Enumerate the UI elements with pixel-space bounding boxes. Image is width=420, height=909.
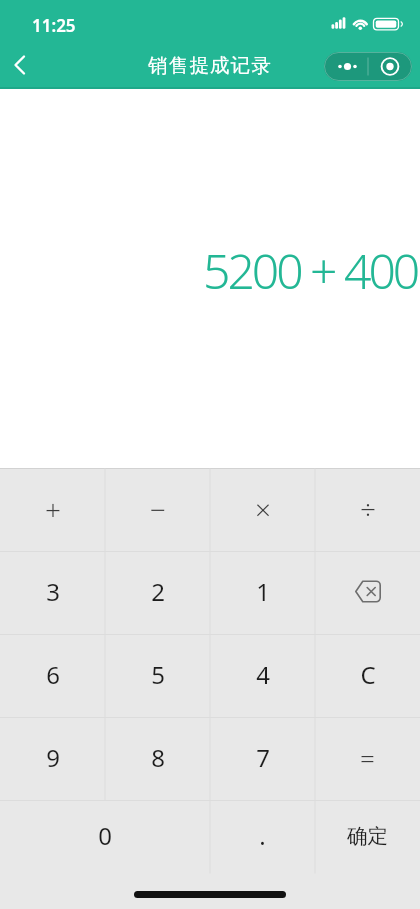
- staticText: 5200 + 400: [203, 238, 418, 303]
- staticText: ÷: [360, 490, 376, 528]
- staticText: C: [360, 658, 376, 691]
- staticText: ×: [255, 490, 271, 528]
- button[interactable]: 2: [105, 552, 210, 635]
- staticText: .: [259, 819, 266, 852]
- staticText: 8: [151, 741, 165, 774]
- staticText: 11:25: [32, 14, 76, 37]
- staticText: 3: [46, 575, 60, 608]
- staticText: 0: [98, 819, 112, 852]
- button[interactable]: 9: [0, 718, 105, 801]
- staticText: 1: [256, 575, 270, 608]
- staticText: 4: [256, 658, 270, 691]
- button[interactable]: 1: [210, 552, 315, 635]
- button[interactable]: 5: [105, 635, 210, 718]
- staticText: 确定: [347, 823, 388, 849]
- button[interactable]: 6: [0, 635, 105, 718]
- staticText: 7: [256, 741, 270, 774]
- staticText: −: [150, 490, 166, 528]
- button[interactable]: 7: [210, 718, 315, 801]
- staticText: =: [360, 740, 375, 775]
- button[interactable]: C: [315, 635, 420, 718]
- button[interactable]: 4: [210, 635, 315, 718]
- button[interactable]: 确定: [315, 801, 420, 874]
- staticText: 9: [46, 741, 60, 774]
- button[interactable]: 0: [0, 801, 210, 874]
- staticText: 6: [46, 658, 60, 691]
- button[interactable]: ÷: [315, 469, 420, 552]
- staticText: 2: [151, 575, 165, 608]
- button[interactable]: −: [105, 469, 210, 552]
- button[interactable]: 3: [0, 552, 105, 635]
- button[interactable]: =: [315, 718, 420, 801]
- button[interactable]: [324, 52, 412, 81]
- button[interactable]: ×: [210, 469, 315, 552]
- button[interactable]: +: [0, 469, 105, 552]
- staticText: +: [45, 490, 61, 528]
- button[interactable]: .: [210, 801, 315, 874]
- staticText: 销售提成记录: [148, 53, 273, 78]
- button[interactable]: 8: [105, 718, 210, 801]
- button[interactable]: [315, 552, 420, 635]
- button[interactable]: [4, 49, 36, 81]
- staticText: 5: [151, 658, 165, 691]
